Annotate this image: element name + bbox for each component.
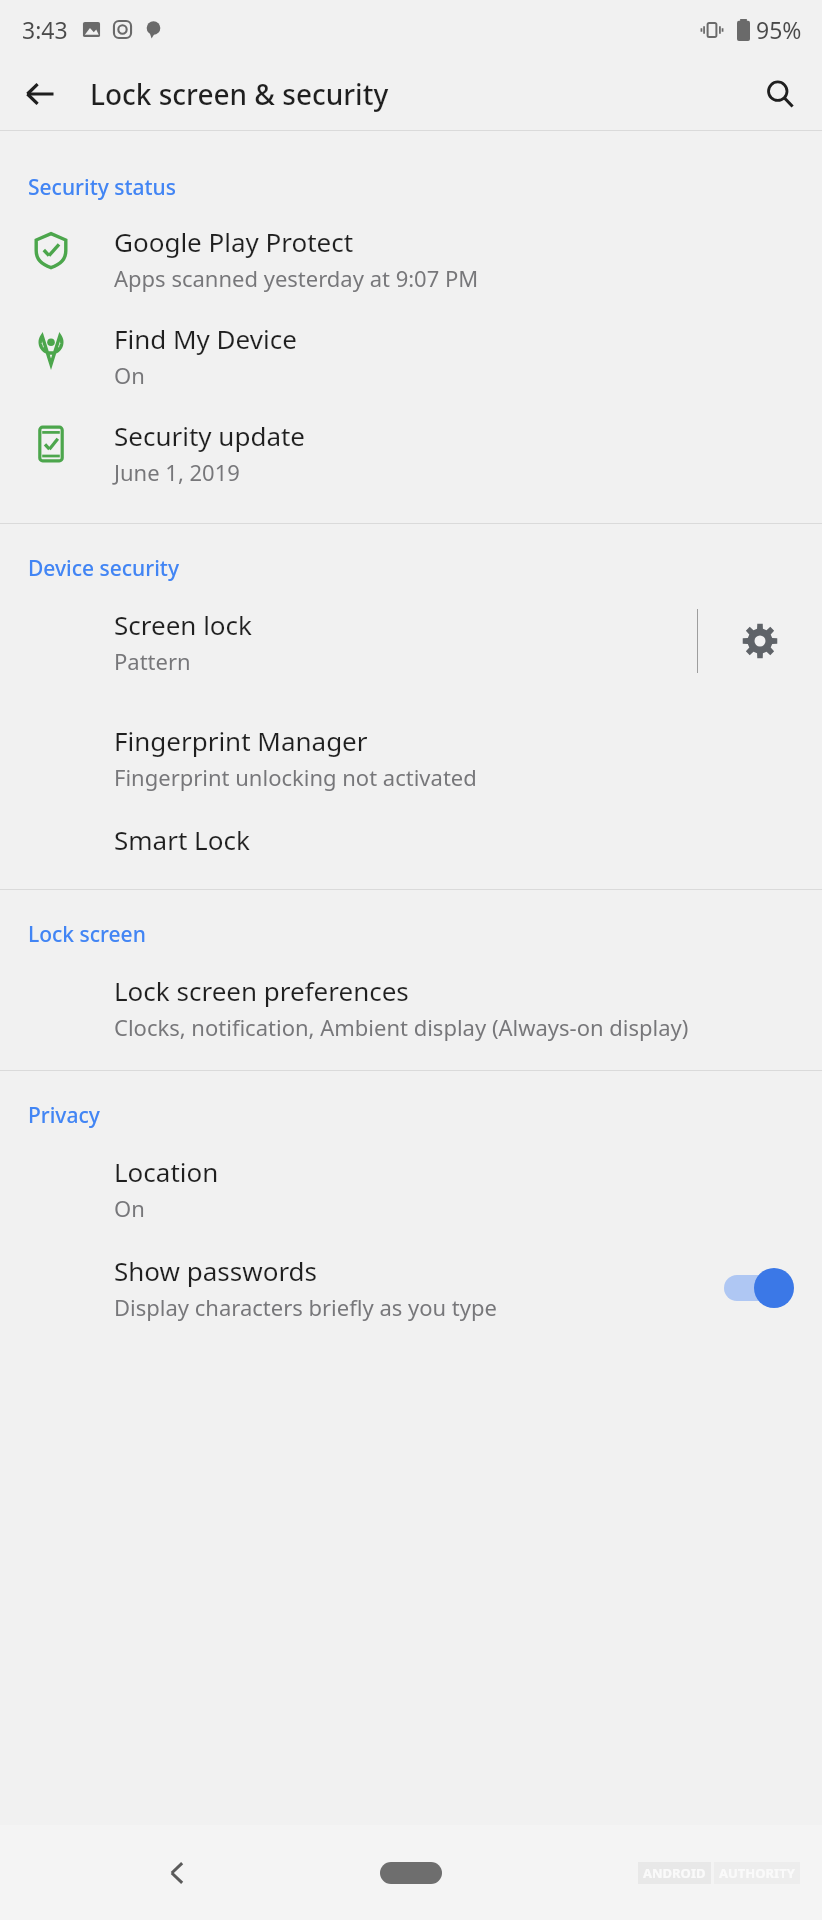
staticText: Smart Lock — [114, 822, 250, 857]
button[interactable]: Security update — [0, 396, 822, 493]
staticText: On — [114, 360, 145, 390]
staticText: On — [114, 1193, 145, 1223]
button[interactable]: Location — [0, 1130, 822, 1229]
staticText: Screen lock — [114, 607, 252, 642]
staticText: Lock screen & security — [90, 75, 389, 113]
button[interactable]: Show passwords — [0, 1229, 822, 1332]
staticText: 3:43 — [22, 14, 68, 45]
staticText: Show passwords — [114, 1253, 318, 1288]
staticText: Privacy — [28, 1101, 100, 1130]
button[interactable]: Back — [12, 66, 68, 122]
staticText: Fingerprint unlocking not activated — [114, 762, 477, 792]
button[interactable]: Home — [361, 1845, 461, 1901]
staticText: Security status — [28, 173, 176, 202]
button[interactable]: Lock screen preferences — [0, 949, 822, 1048]
staticText: Lock screen preferences — [114, 973, 409, 1008]
staticText: Google Play Protect — [114, 224, 354, 259]
button[interactable]: Search — [752, 66, 808, 122]
staticText: June 1, 2019 — [114, 457, 240, 487]
staticText: Lock screen — [28, 920, 146, 949]
staticText: Clocks, notification, Ambient display (A… — [114, 1012, 689, 1042]
staticText: Security update — [114, 418, 306, 453]
button[interactable]: Back — [148, 1843, 208, 1903]
staticText: 95% — [756, 14, 802, 45]
staticText: Apps scanned yesterday at 9:07 PM — [114, 263, 479, 293]
staticText: Location — [114, 1154, 219, 1189]
button[interactable]: Google Play Protect — [0, 202, 822, 299]
button[interactable]: Screen lock — [0, 583, 697, 699]
staticText: Fingerprint Manager — [114, 723, 368, 758]
staticText: ANDROID — [643, 1864, 706, 1882]
staticText: Device security — [28, 554, 179, 583]
button[interactable]: Find My Device — [0, 299, 822, 396]
staticText: Pattern — [114, 646, 191, 676]
staticText: AUTHORITY — [719, 1864, 795, 1882]
staticText: Display characters briefly as you type — [114, 1292, 497, 1322]
button[interactable]: Smart Lock — [0, 798, 822, 863]
button[interactable]: Screen lock settings — [698, 583, 822, 699]
staticText: Find My Device — [114, 321, 297, 356]
button[interactable]: Fingerprint Manager — [0, 699, 822, 798]
